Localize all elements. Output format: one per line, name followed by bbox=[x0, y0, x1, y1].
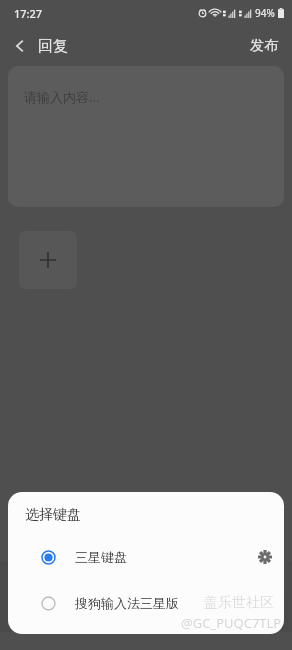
button[interactable]: 搜狗输入法三星版 bbox=[8, 584, 284, 622]
button[interactable]: Add attachment bbox=[19, 231, 77, 289]
staticText: 选择键盘 bbox=[25, 506, 81, 524]
staticText: def bbox=[197, 603, 220, 623]
staticText: 盖乐世社区 bbox=[204, 594, 274, 612]
staticText: 17:27 bbox=[14, 6, 43, 21]
staticText: 三星键盘 bbox=[75, 549, 127, 565]
staticText: 3 bbox=[230, 596, 235, 607]
button[interactable]: abc bbox=[115, 595, 176, 631]
staticText: 分词 bbox=[70, 605, 96, 621]
button[interactable]: Emoji bbox=[4, 561, 39, 594]
button[interactable]: Clipboard bbox=[74, 561, 109, 594]
button[interactable]: 发布 bbox=[236, 26, 292, 66]
staticText: 发布 bbox=[250, 37, 278, 55]
button[interactable]: Keyboard settings bbox=[246, 538, 284, 576]
staticText: 回复 bbox=[38, 37, 68, 56]
button[interactable]: def bbox=[178, 595, 239, 631]
staticText: abc bbox=[133, 603, 158, 623]
button[interactable]: 三星键盘 bbox=[8, 538, 284, 576]
button[interactable]: , bbox=[2, 595, 50, 631]
staticText: 94% bbox=[255, 6, 275, 20]
button[interactable]: Emoticon bbox=[39, 561, 74, 594]
button[interactable]: Backspace bbox=[241, 595, 290, 631]
button[interactable]: More bbox=[252, 561, 288, 594]
button[interactable]: Keyboard bbox=[109, 561, 144, 594]
staticText: @GC_PUQC7TLP bbox=[181, 614, 282, 632]
button[interactable]: 回复 bbox=[0, 26, 76, 66]
staticText: 搜狗输入法三星版 bbox=[75, 595, 179, 611]
staticText: 1 bbox=[104, 596, 109, 607]
other: Backspace bbox=[255, 606, 276, 620]
button[interactable]: 分词 bbox=[52, 595, 113, 631]
staticText: 2 bbox=[167, 596, 172, 607]
staticText: 请输入内容... bbox=[24, 88, 100, 106]
